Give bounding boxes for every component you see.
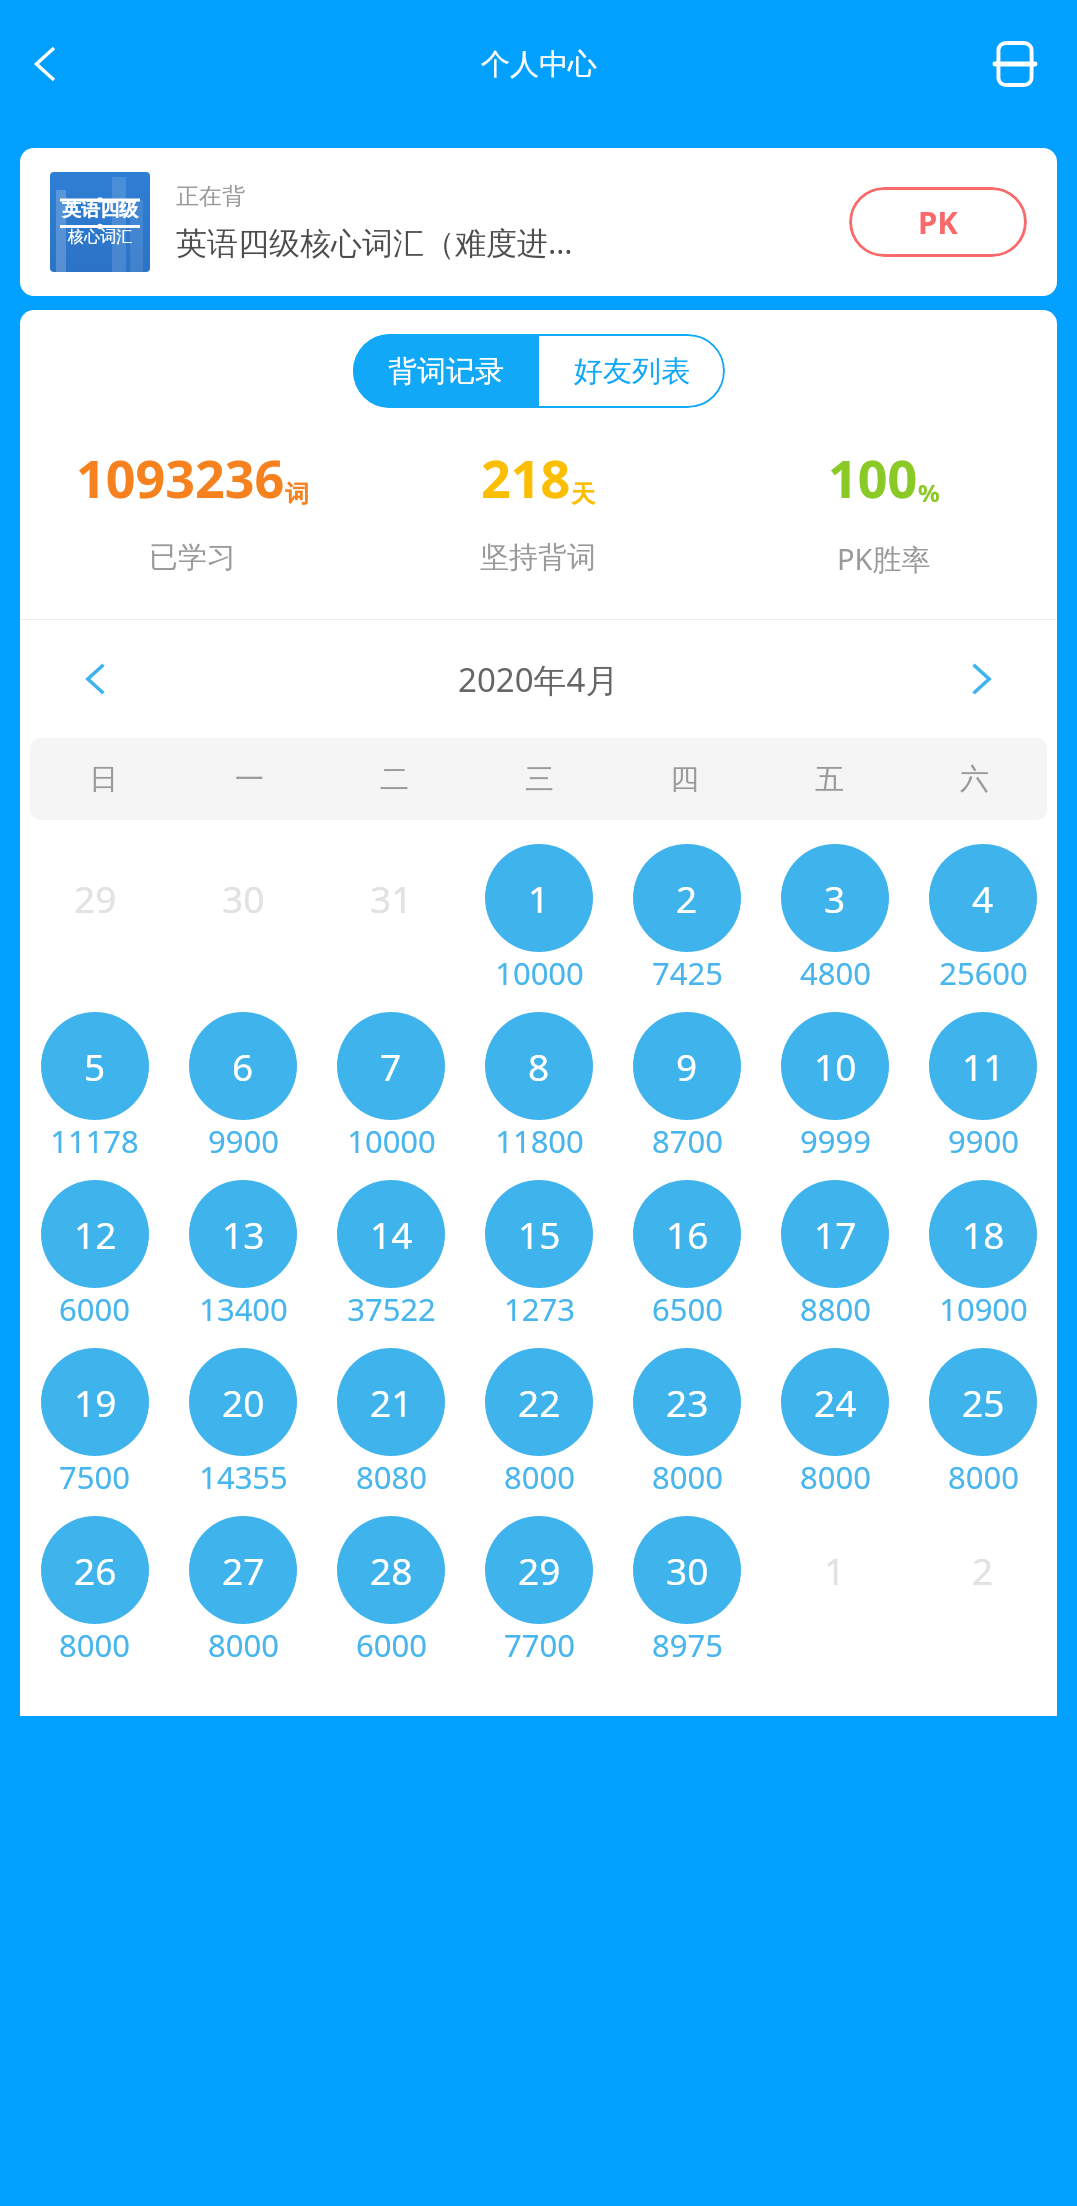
staticText: 218	[481, 442, 571, 513]
button[interactable]: 背词记录	[353, 334, 539, 408]
button[interactable]: 8	[465, 1004, 613, 1172]
staticText: 10000	[495, 952, 584, 994]
button[interactable]: PK	[849, 187, 1027, 257]
staticText: 8	[528, 1041, 550, 1091]
staticText: 37522	[347, 1288, 436, 1330]
button[interactable]: 22	[465, 1340, 613, 1508]
staticText: 14355	[199, 1456, 288, 1498]
button[interactable]: 3	[761, 836, 909, 1004]
button[interactable]: 100	[711, 442, 1057, 579]
staticText: 11178	[50, 1120, 139, 1162]
staticText: 6000	[356, 1624, 427, 1666]
staticText: 四	[670, 761, 699, 798]
button[interactable]: 31	[317, 836, 465, 1004]
staticText: 3	[824, 873, 846, 923]
staticText: 17	[814, 1209, 857, 1259]
button[interactable]: 1	[465, 836, 613, 1004]
staticText: 12	[74, 1209, 117, 1259]
staticText: 核心词汇	[68, 227, 132, 247]
staticText: 22	[518, 1377, 561, 1427]
button[interactable]: 20	[169, 1340, 317, 1508]
staticText: 10	[814, 1041, 857, 1091]
button[interactable]: 11	[909, 1004, 1057, 1172]
button[interactable]: 30	[169, 836, 317, 1004]
staticText: 1093236	[76, 442, 285, 513]
staticText: 27	[222, 1545, 265, 1595]
button[interactable]: 14	[317, 1172, 465, 1340]
staticText: 坚持背词	[480, 539, 596, 576]
staticText: 9900	[208, 1120, 279, 1162]
staticText: 10900	[939, 1288, 1028, 1330]
staticText: 1273	[504, 1288, 575, 1330]
button[interactable]: 7	[317, 1004, 465, 1172]
staticText: 7425	[652, 952, 723, 994]
staticText: 6	[232, 1041, 254, 1091]
staticText: 26	[74, 1545, 117, 1595]
staticText: 9999	[800, 1120, 871, 1162]
button[interactable]: 1093236	[20, 442, 365, 576]
staticText: 11800	[495, 1120, 584, 1162]
button[interactable]: 23	[613, 1340, 761, 1508]
button[interactable]: 好友列表	[539, 334, 725, 408]
staticText: 24	[814, 1377, 857, 1427]
staticText: 8000	[652, 1456, 723, 1498]
staticText: 10000	[347, 1120, 436, 1162]
button[interactable]: 18	[909, 1172, 1057, 1340]
button[interactable]: 25	[909, 1340, 1057, 1508]
staticText: 英语四级	[62, 198, 138, 222]
button[interactable]: 4	[909, 836, 1057, 1004]
button[interactable]: Next month	[945, 643, 1017, 715]
staticText: 30	[222, 873, 265, 923]
staticText: 11	[962, 1041, 1005, 1091]
button[interactable]: 10	[761, 1004, 909, 1172]
staticText: 7700	[504, 1624, 575, 1666]
staticText: 8000	[800, 1456, 871, 1498]
button[interactable]: 28	[317, 1508, 465, 1676]
staticText: 15	[518, 1209, 561, 1259]
button[interactable]: Previous month	[60, 643, 132, 715]
button[interactable]: 24	[761, 1340, 909, 1508]
button[interactable]: 16	[613, 1172, 761, 1340]
button[interactable]: 15	[465, 1172, 613, 1340]
staticText: 9	[676, 1041, 698, 1091]
button[interactable]: 30	[613, 1508, 761, 1676]
staticText: 二	[380, 761, 409, 798]
staticText: 正在背	[176, 182, 245, 211]
button[interactable]: 9	[613, 1004, 761, 1172]
button[interactable]: 17	[761, 1172, 909, 1340]
button[interactable]: 29	[465, 1508, 613, 1676]
staticText: 13	[222, 1209, 265, 1259]
staticText: 8800	[800, 1288, 871, 1330]
staticText: %	[918, 476, 940, 509]
button[interactable]: 29	[20, 836, 169, 1004]
button[interactable]: Back	[10, 28, 82, 100]
button[interactable]: 27	[169, 1508, 317, 1676]
staticText: 英语四级核心词汇（难度进…	[176, 221, 573, 263]
button[interactable]: 13	[169, 1172, 317, 1340]
staticText: 已学习	[149, 539, 236, 576]
button[interactable]: 218	[365, 442, 711, 576]
staticText: 7	[380, 1041, 402, 1091]
staticText: 2020年4月	[458, 657, 619, 702]
staticText: 30	[666, 1545, 709, 1595]
button[interactable]: 19	[20, 1340, 169, 1508]
button[interactable]: 21	[317, 1340, 465, 1508]
button[interactable]: Switch layout	[977, 26, 1053, 102]
button[interactable]: 6	[169, 1004, 317, 1172]
staticText: PK胜率	[837, 539, 931, 579]
button[interactable]: 2	[613, 836, 761, 1004]
button[interactable]: 26	[20, 1508, 169, 1676]
staticText: 三	[525, 761, 554, 798]
staticText: 19	[74, 1377, 117, 1427]
button[interactable]: 英语四级	[20, 148, 1057, 296]
staticText: 六	[960, 761, 989, 798]
button[interactable]: 5	[20, 1004, 169, 1172]
staticText: 21	[370, 1377, 413, 1427]
staticText: 8080	[356, 1456, 427, 1498]
staticText: 16	[666, 1209, 709, 1259]
button[interactable]: 12	[20, 1172, 169, 1340]
staticText: 25600	[939, 952, 1028, 994]
staticText: 29	[518, 1545, 561, 1595]
